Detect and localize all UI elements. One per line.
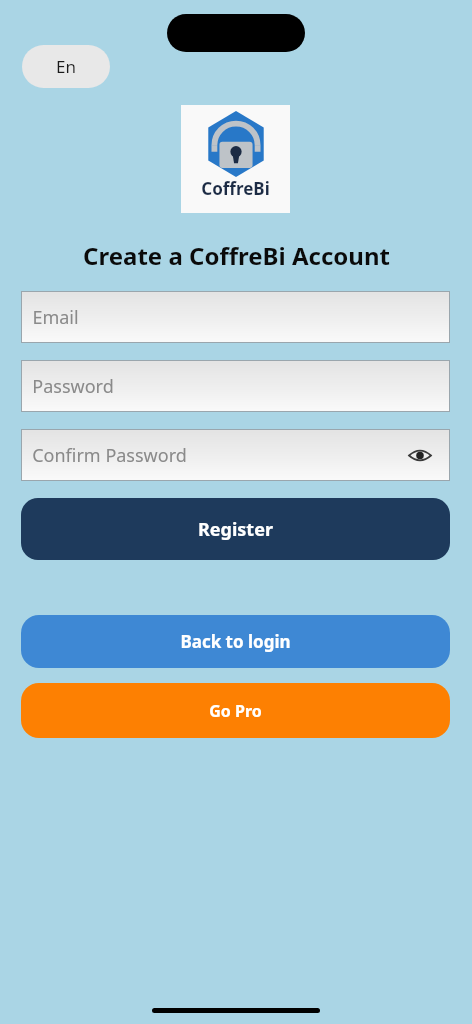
button[interactable]: Show password: [405, 440, 435, 470]
staticText: Back to login: [180, 630, 291, 653]
staticText: Go Pro: [209, 700, 262, 722]
button[interactable]: Email: [21, 291, 450, 343]
button[interactable]: Password: [21, 360, 450, 412]
button[interactable]: Go Pro: [21, 683, 450, 738]
button[interactable]: Confirm Password: [21, 429, 450, 481]
button[interactable]: En: [22, 45, 110, 88]
staticText: Register: [198, 517, 273, 542]
staticText: Email: [32, 305, 79, 330]
button[interactable]: Back to login: [21, 615, 450, 668]
button[interactable]: Register: [21, 498, 450, 560]
staticText: Password: [32, 374, 114, 399]
staticText: Create a CoffreBi Account: [83, 239, 390, 272]
staticText: CoffreBi: [201, 177, 270, 200]
staticText: En: [56, 55, 76, 78]
staticText: Confirm Password: [32, 443, 187, 468]
